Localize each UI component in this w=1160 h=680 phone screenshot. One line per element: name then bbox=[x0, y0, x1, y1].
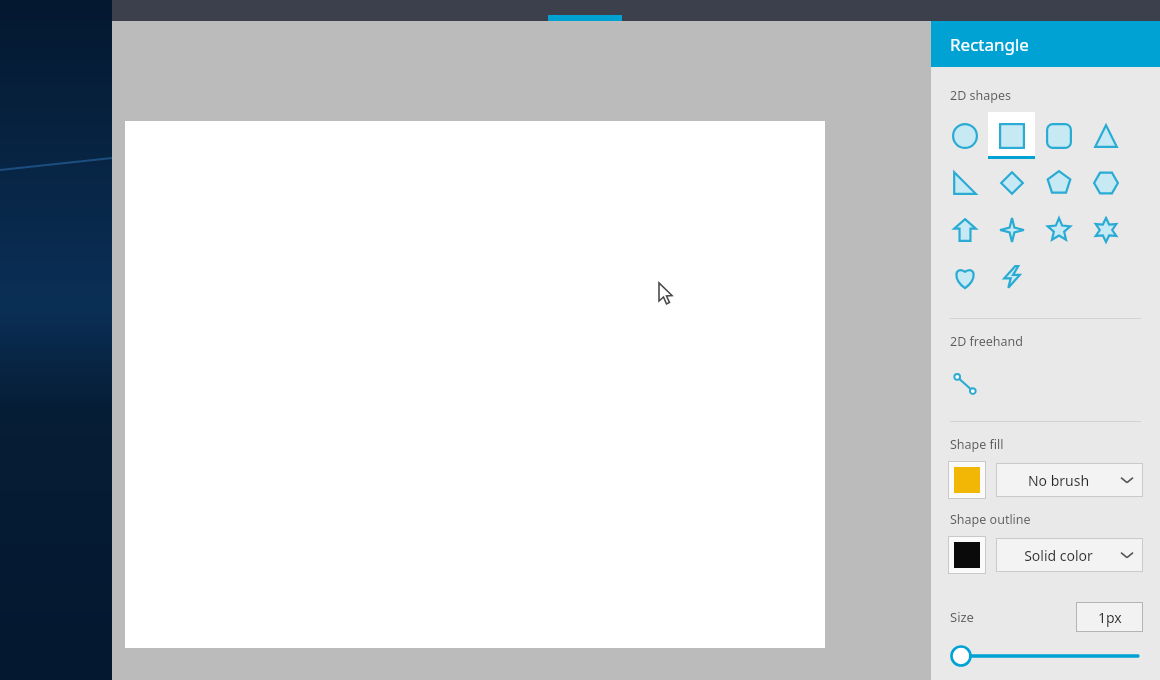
button[interactable]: diamond bbox=[988, 159, 1035, 206]
button[interactable]: circle bbox=[941, 112, 988, 159]
button[interactable]: arrow bbox=[941, 206, 988, 253]
staticText: Shape outline bbox=[950, 511, 1031, 528]
button[interactable]: hexagon bbox=[1082, 159, 1129, 206]
button[interactable]: triangle bbox=[1082, 112, 1129, 159]
button[interactable]: 1px bbox=[1076, 602, 1143, 632]
button[interactable]: Freehand line bbox=[941, 360, 988, 407]
button[interactable]: heart bbox=[941, 253, 988, 300]
staticText: 2D shapes bbox=[950, 87, 1011, 104]
button[interactable]: bolt bbox=[988, 253, 1035, 300]
staticText: 1px bbox=[1098, 608, 1122, 627]
button[interactable]: square bbox=[988, 112, 1035, 159]
staticText: Size bbox=[950, 608, 974, 626]
button[interactable]: Size slider bbox=[931, 644, 1160, 668]
button[interactable]: righttri bbox=[941, 159, 988, 206]
button[interactable]: star4 bbox=[988, 206, 1035, 253]
staticText: No brush bbox=[996, 471, 1121, 490]
button[interactable]: Rectangle bbox=[931, 21, 1160, 67]
button[interactable]: roundsq bbox=[1035, 112, 1082, 159]
button[interactable]: star5 bbox=[1035, 206, 1082, 253]
staticText: 2D freehand bbox=[950, 333, 1023, 350]
button[interactable]: star6 bbox=[1082, 206, 1129, 253]
button[interactable]: pentagon bbox=[1035, 159, 1082, 206]
button[interactable]: Solid color bbox=[996, 538, 1143, 572]
staticText: Shape fill bbox=[950, 436, 1004, 453]
staticText: Rectangle bbox=[950, 33, 1029, 56]
button[interactable]: Color swatch bbox=[948, 461, 986, 499]
button[interactable]: No brush bbox=[996, 463, 1143, 497]
button[interactable]: Color swatch bbox=[948, 536, 986, 574]
staticText: Solid color bbox=[996, 546, 1121, 565]
